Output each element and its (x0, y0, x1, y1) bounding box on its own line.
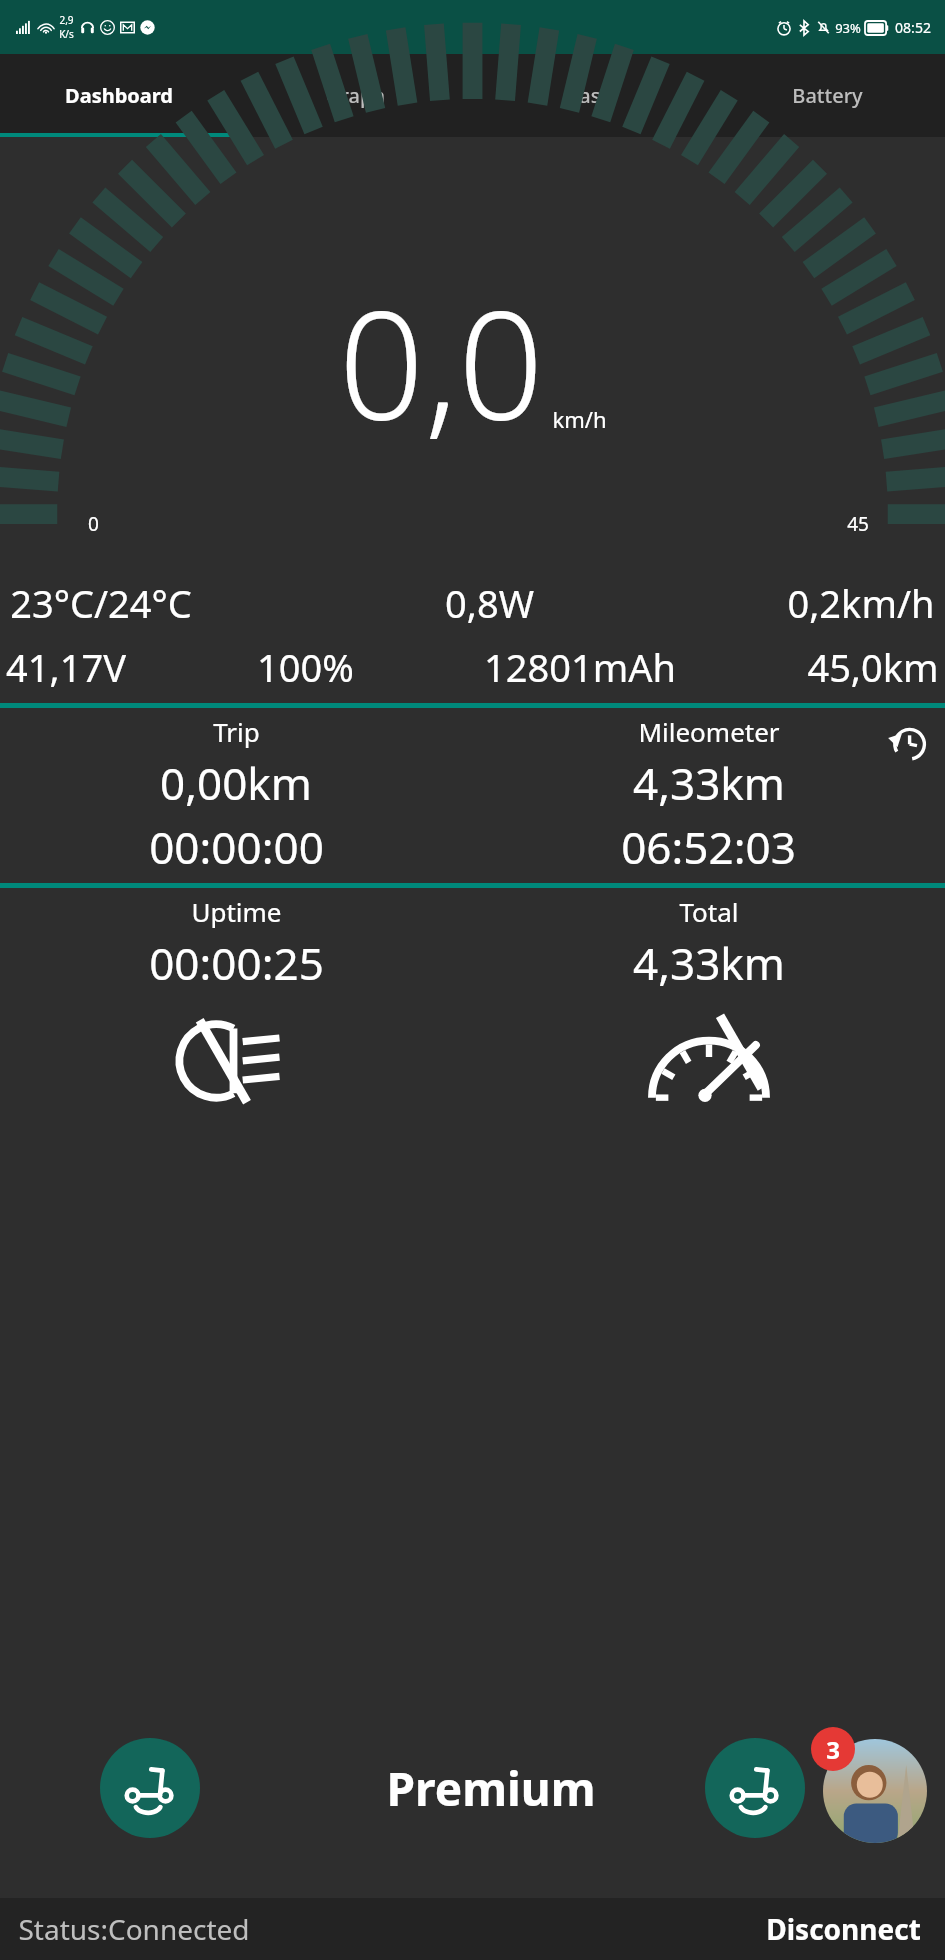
button[interactable]: Total (472, 888, 945, 999)
staticText: 00:00:00 (149, 817, 324, 877)
staticText: K/s (59, 27, 74, 41)
staticText: 4,33km (633, 753, 785, 813)
button[interactable]: Basic (473, 54, 709, 137)
button[interactable]: Dashboard (0, 54, 237, 137)
staticText: Mileometer (638, 714, 780, 749)
button[interactable]: History (885, 720, 931, 766)
staticText: 12801mAh (484, 641, 676, 693)
staticText: Battery (792, 82, 863, 109)
staticText: Status:Connected (18, 1910, 250, 1948)
staticText: 93% (835, 19, 861, 37)
staticText: 0,8W (445, 577, 534, 629)
staticText: Premium (386, 1757, 596, 1820)
staticText: 0,00km (160, 753, 312, 813)
staticText: 4,33km (633, 933, 785, 993)
button[interactable]: Profile (823, 1739, 927, 1843)
staticText: 06:52:03 (621, 817, 796, 877)
staticText: Trip (213, 714, 260, 749)
staticText: 00:00:25 (149, 933, 324, 993)
staticText: 41,17V (6, 641, 126, 693)
staticText: 0 (88, 511, 99, 537)
button[interactable]: Scooter profile (100, 1738, 200, 1838)
button[interactable]: Graph (237, 54, 473, 137)
staticText: Graph (326, 82, 385, 109)
staticText: Basic (566, 82, 616, 109)
button[interactable]: Uptime (0, 888, 472, 999)
staticText: 23°C/24°C (10, 577, 192, 629)
staticText: 0,2km/h (787, 577, 935, 629)
staticText: Uptime (191, 894, 282, 929)
staticText: 45,0km (807, 641, 939, 693)
button[interactable]: Disconnect (766, 1910, 921, 1948)
staticText: Total (679, 894, 739, 929)
staticText: 45 (847, 511, 869, 537)
button[interactable]: Battery (709, 54, 945, 137)
button[interactable]: Headlight off (0, 1013, 472, 1105)
staticText: 3 (826, 1733, 840, 1766)
staticText: 0,0 (338, 260, 544, 464)
button[interactable]: Scooter (705, 1738, 805, 1838)
staticText: km/h (552, 404, 607, 434)
button[interactable]: Cruise control off (472, 1013, 945, 1105)
staticText: Disconnect (766, 1910, 921, 1948)
staticText: 08:52 (895, 18, 931, 37)
button[interactable]: Premium (386, 1757, 596, 1820)
button[interactable]: Status:Connected (18, 1910, 250, 1948)
staticText: 2,9 (59, 13, 74, 27)
button[interactable]: Mileometer (472, 708, 945, 883)
staticText: Dashboard (65, 82, 173, 109)
staticText: 100% (257, 641, 354, 693)
button[interactable]: Trip (0, 708, 472, 883)
